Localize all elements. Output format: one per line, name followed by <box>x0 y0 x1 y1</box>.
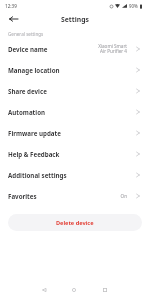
staticText: Automation <box>8 108 46 116</box>
staticText: Firmware update <box>8 129 61 137</box>
button[interactable]: Recents <box>98 283 112 297</box>
staticText: Favorites <box>8 192 37 200</box>
button[interactable]: Delete device <box>8 214 142 231</box>
staticText: Settings <box>61 15 89 24</box>
button[interactable]: Favorites <box>0 185 150 206</box>
button[interactable]: Back <box>6 12 20 26</box>
staticText: Device name <box>8 45 48 53</box>
button[interactable]: Additional settings <box>0 164 150 185</box>
button[interactable]: Firmware update <box>0 122 150 143</box>
staticText: Xiaomi Smart Air Purifier 4 <box>98 43 127 55</box>
staticText: Additional settings <box>8 171 67 179</box>
button[interactable]: Automation <box>0 101 150 122</box>
button[interactable]: Manage location <box>0 59 150 80</box>
staticText: 12:39 <box>5 3 17 9</box>
button[interactable]: Back <box>37 283 51 297</box>
staticText: Manage location <box>8 66 60 74</box>
staticText: Share device <box>8 87 47 95</box>
staticText: On <box>120 193 127 199</box>
button[interactable]: Device name <box>0 38 150 59</box>
staticText: Help & Feedback <box>8 150 60 158</box>
button[interactable]: Help & Feedback <box>0 143 150 164</box>
staticText: General settings <box>8 31 44 37</box>
staticText: Delete device <box>56 219 94 227</box>
staticText: 90% <box>129 3 138 9</box>
button[interactable]: Home <box>67 283 81 297</box>
button[interactable]: Share device <box>0 80 150 101</box>
